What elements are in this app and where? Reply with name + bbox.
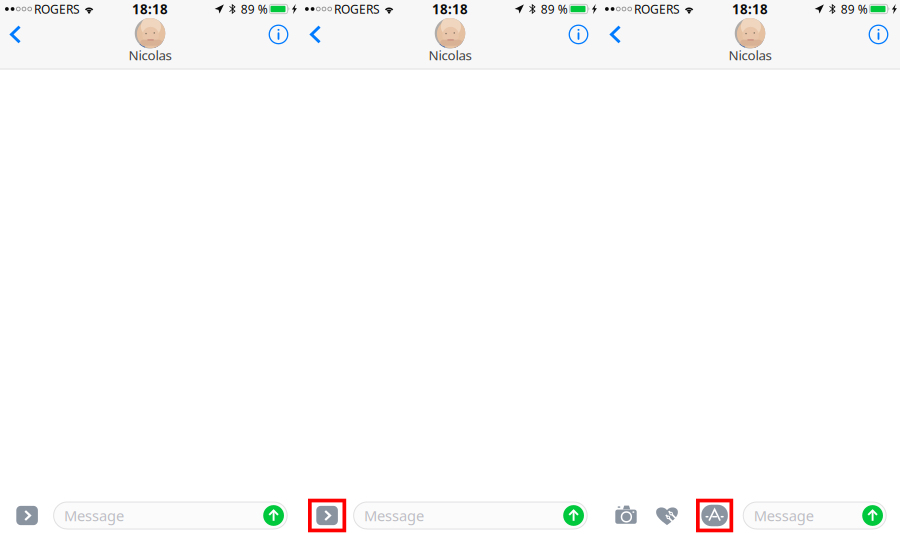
button[interactable]: Nicolas	[113, 18, 187, 62]
button[interactable]: Back	[302, 16, 328, 52]
staticText: 89 %	[541, 1, 568, 17]
staticText: 18:18	[132, 0, 168, 18]
staticText: ROGERS	[634, 1, 680, 17]
button[interactable]: Nicolas	[413, 18, 487, 62]
button[interactable]: Details	[563, 16, 593, 52]
staticText: 18:18	[432, 0, 468, 18]
button[interactable]: Send	[862, 505, 883, 526]
staticText: Message	[64, 506, 124, 525]
staticText: ROGERS	[34, 1, 80, 17]
button[interactable]: Camera	[613, 500, 639, 530]
staticText: 89 %	[841, 1, 868, 17]
staticText: Nicolas	[428, 46, 471, 64]
staticText: 89 %	[241, 1, 268, 17]
button[interactable]: Details	[263, 16, 293, 52]
button[interactable]: Send	[263, 505, 284, 526]
button[interactable]: Send	[563, 505, 584, 526]
button[interactable]: Digital Touch	[654, 500, 680, 530]
button[interactable]: Back	[602, 16, 628, 52]
staticText: Nicolas	[128, 46, 171, 64]
staticText: Message	[754, 506, 814, 525]
button[interactable]: Show apps	[8, 499, 46, 532]
button[interactable]: iMessage apps	[696, 499, 733, 532]
button[interactable]: Nicolas	[713, 18, 787, 62]
button[interactable]: Show apps	[308, 499, 346, 532]
staticText: ROGERS	[334, 1, 380, 17]
staticText: Nicolas	[728, 46, 771, 64]
button[interactable]: Back	[2, 16, 28, 52]
staticText: Message	[364, 506, 424, 525]
staticText: 18:18	[732, 0, 768, 18]
button[interactable]: Details	[863, 16, 893, 52]
